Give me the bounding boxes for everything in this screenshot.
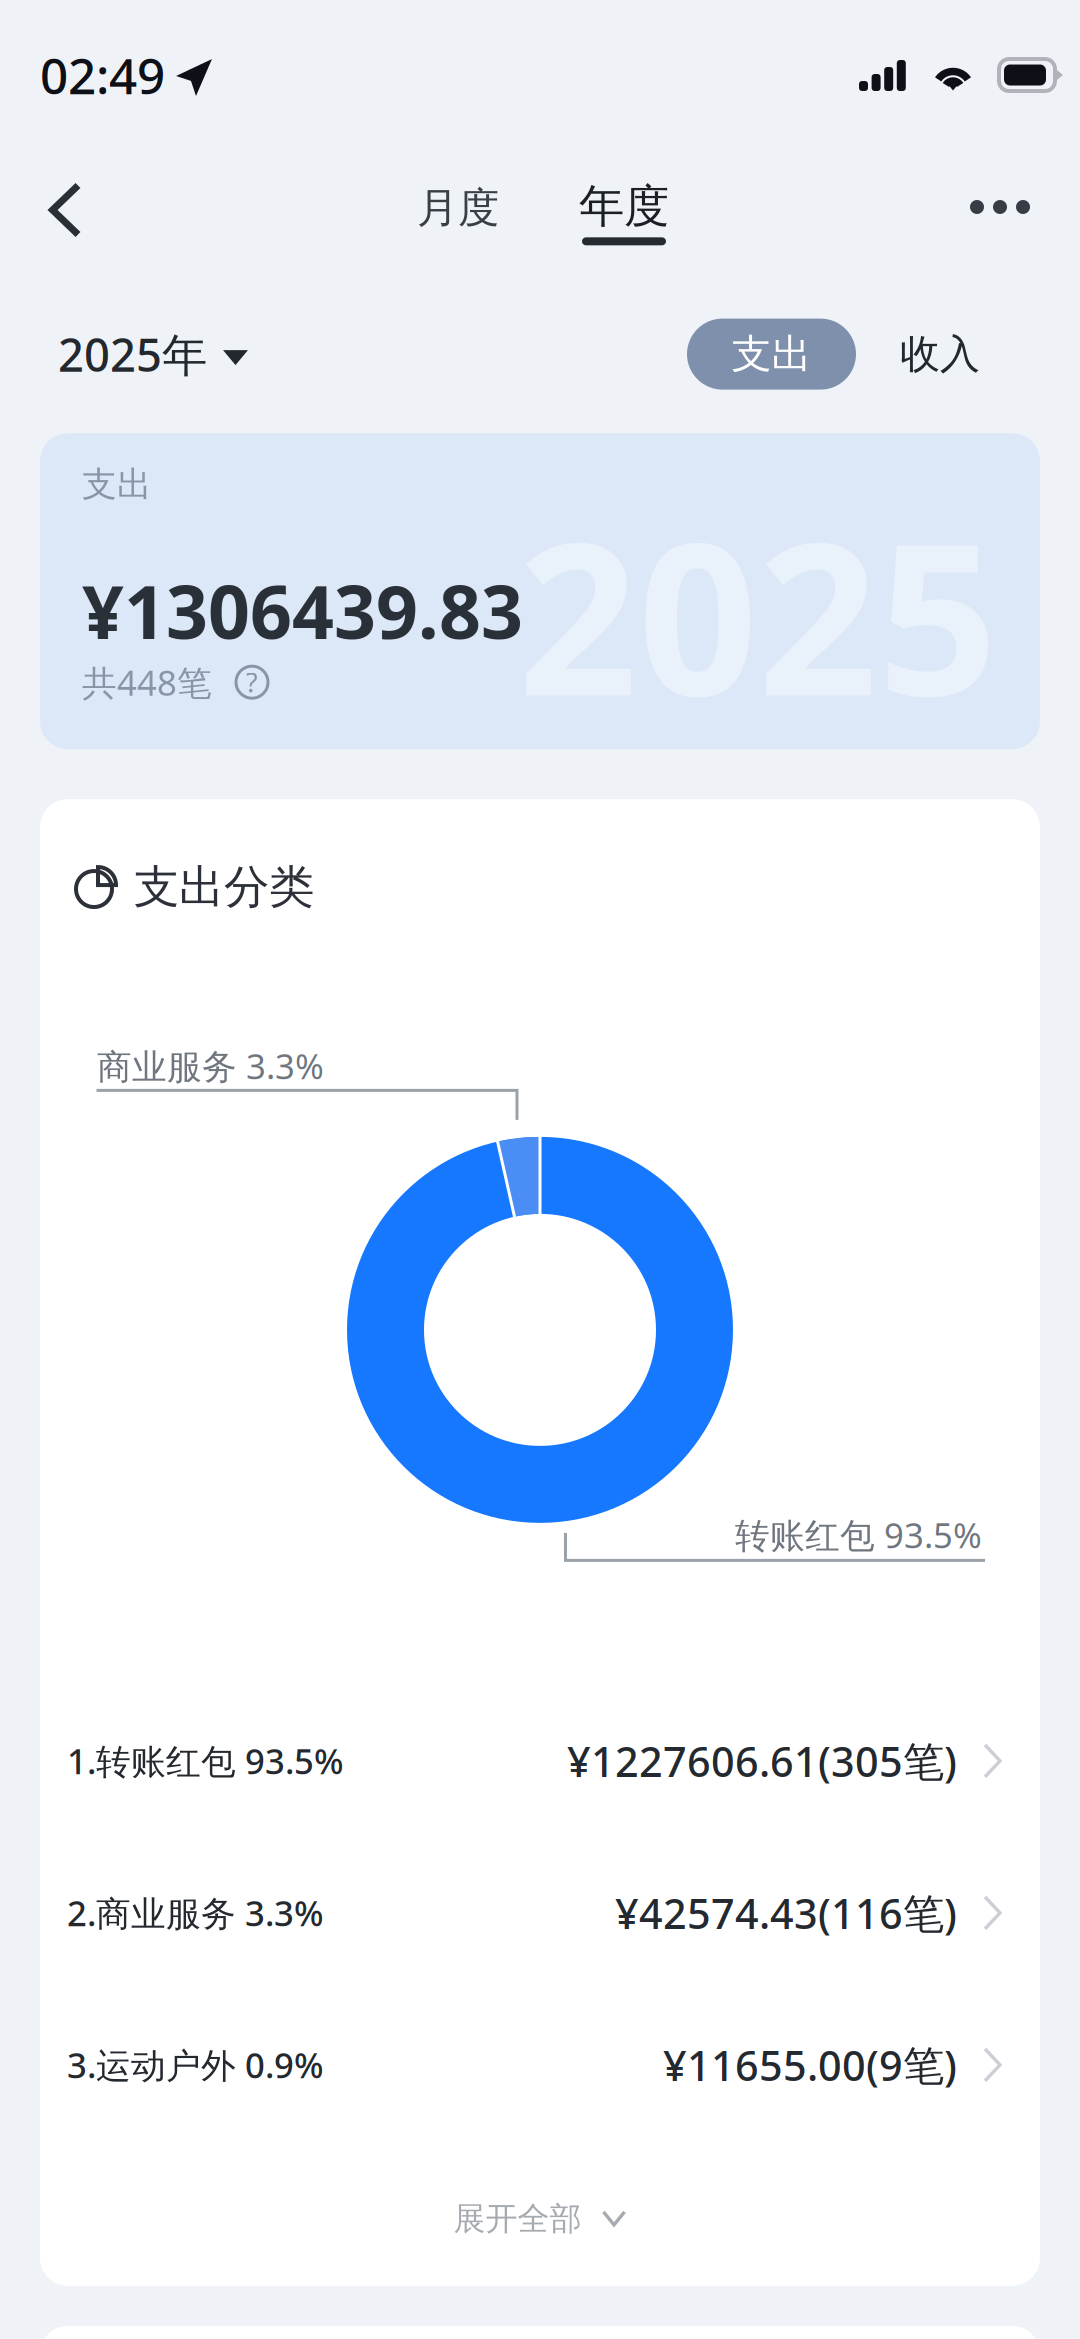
staticText: 02:49 xyxy=(40,42,165,108)
staticText: 2025 xyxy=(518,475,998,753)
button[interactable]: 年度 xyxy=(563,167,685,249)
button[interactable]: 收入 xyxy=(900,315,980,393)
staticText: 支出 xyxy=(82,463,152,506)
button[interactable]: 返回 xyxy=(0,140,116,260)
staticText: 月度 xyxy=(417,183,499,233)
button[interactable]: 展开全部 xyxy=(40,2152,1040,2286)
staticText: ¥1306439.83 xyxy=(82,562,523,659)
staticText: 年度 xyxy=(579,179,669,234)
staticText: 1.转账红包 93.5% xyxy=(67,1738,344,1784)
staticText: ¥42574.43(116笔) xyxy=(615,1885,957,1940)
staticText: 3.运动户外 0.9% xyxy=(67,2042,324,2088)
button[interactable]: 3.运动户外 0.9% xyxy=(40,2000,1040,2152)
button[interactable]: 月度 xyxy=(395,157,521,259)
staticText: 支出 xyxy=(731,329,811,379)
staticText: 共448笔 xyxy=(82,659,212,705)
staticText: 2.商业服务 3.3% xyxy=(67,1890,324,1936)
staticText: 商业服务 3.3% xyxy=(97,1043,324,1089)
button[interactable]: 支出 xyxy=(687,319,856,390)
staticText: 转账红包 93.5% xyxy=(735,1512,982,1558)
staticText: 2025年 xyxy=(58,324,207,384)
staticText: 收入 xyxy=(900,329,980,379)
staticText: ¥1227606.61(305笔) xyxy=(567,1733,957,1788)
staticText: ¥11655.00(9笔) xyxy=(663,2037,957,2092)
staticText: ? xyxy=(246,664,258,700)
button[interactable]: 更多 xyxy=(930,140,1080,260)
staticText: 支出分类 xyxy=(134,859,314,915)
button[interactable]: 1.转账红包 93.5% xyxy=(40,1696,1040,1848)
button[interactable]: 2025年 xyxy=(58,312,249,396)
button[interactable]: 2.商业服务 3.3% xyxy=(40,1848,1040,2000)
staticText: 展开全部 xyxy=(453,2199,581,2238)
